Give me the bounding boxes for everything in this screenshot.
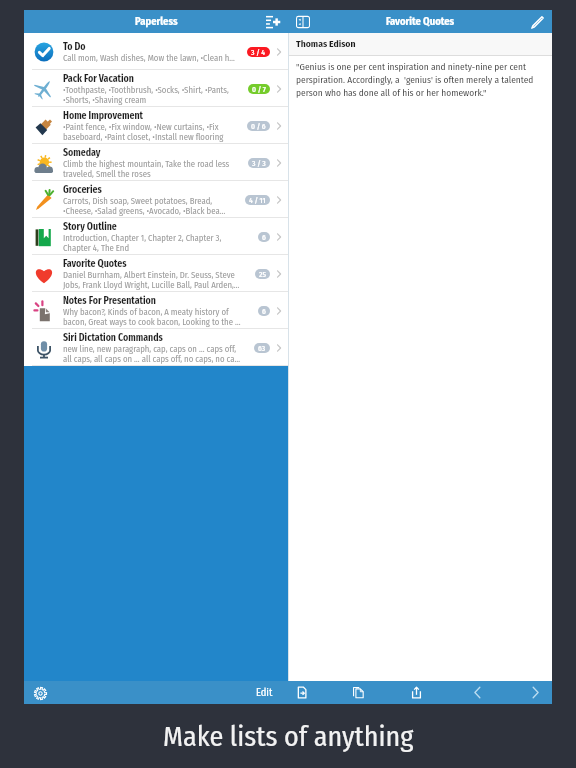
staticText: Favorite Quotes bbox=[63, 258, 127, 270]
staticText: Home Improvement bbox=[63, 110, 144, 122]
button[interactable]: Siri Dictation Commands bbox=[24, 329, 288, 366]
button[interactable]: Home Improvement bbox=[24, 107, 288, 144]
button[interactable]: Share bbox=[405, 681, 428, 704]
staticText: 4 / 11 bbox=[249, 196, 266, 205]
button[interactable]: Previous bbox=[466, 681, 489, 704]
staticText: new line, new paragraph, cap, caps on … … bbox=[63, 344, 242, 364]
button[interactable]: Pack For Vacation bbox=[24, 70, 288, 107]
staticText: 3 / 3 bbox=[252, 159, 266, 168]
button[interactable]: Edit bbox=[256, 686, 273, 699]
button[interactable]: Duplicate bbox=[347, 681, 370, 704]
staticText: Pack For Vacation bbox=[63, 73, 134, 85]
staticText: "Genius is one per cent inspiration and … bbox=[296, 61, 537, 98]
staticText: Siri Dictation Commands bbox=[63, 332, 163, 344]
button[interactable]: Export bbox=[291, 681, 314, 704]
staticText: 6 bbox=[262, 233, 266, 242]
button[interactable]: To Do bbox=[24, 33, 288, 70]
staticText: Thomas Edison bbox=[296, 38, 356, 50]
staticText: Introduction, Chapter 1, Chapter 2, Chap… bbox=[63, 233, 242, 253]
staticText: Groceries bbox=[63, 184, 102, 196]
staticText: Carrots, Dish soap, Sweet potatoes, Brea… bbox=[63, 196, 242, 216]
button[interactable]: Someday bbox=[24, 144, 288, 181]
staticText: 0 / 7 bbox=[252, 85, 266, 94]
button[interactable]: Toggle sidebar bbox=[292, 11, 314, 33]
staticText: Paperless bbox=[135, 15, 178, 28]
staticText: Edit bbox=[256, 686, 273, 699]
button[interactable]: Story Outline bbox=[24, 218, 288, 255]
staticText: 0 / 6 bbox=[251, 122, 266, 131]
button[interactable]: Settings bbox=[30, 683, 50, 703]
staticText: To Do bbox=[63, 41, 86, 53]
button[interactable]: Notes For Presentation bbox=[24, 292, 288, 329]
button[interactable]: Next bbox=[524, 681, 547, 704]
button[interactable]: Groceries bbox=[24, 181, 288, 218]
staticText: 25 bbox=[259, 270, 266, 279]
staticText: Daniel Burnham, Albert Einstein, Dr. Seu… bbox=[63, 270, 242, 290]
staticText: Someday bbox=[63, 147, 101, 159]
staticText: Make lists of anything bbox=[163, 720, 414, 754]
staticText: Why bacon?, Kinds of bacon, A meaty hist… bbox=[63, 307, 242, 327]
staticText: 3 / 4 bbox=[251, 48, 266, 57]
staticText: •Toothpaste, •Toothbrush, •Socks, •Shirt… bbox=[63, 85, 242, 105]
button[interactable]: Favorite Quotes bbox=[24, 255, 288, 292]
staticText: Climb the highest mountain, Take the roa… bbox=[63, 159, 242, 179]
staticText: Notes For Presentation bbox=[63, 295, 156, 307]
button[interactable]: New list bbox=[262, 11, 284, 33]
staticText: 63 bbox=[258, 344, 266, 353]
staticText: •Paint fence, •Fix window, •New curtains… bbox=[63, 122, 242, 142]
staticText: Story Outline bbox=[63, 221, 117, 233]
staticText: 6 bbox=[262, 307, 266, 316]
staticText: Call mom, Wash dishes, Mow the lawn, •Cl… bbox=[63, 53, 235, 63]
staticText: Favorite Quotes bbox=[386, 15, 455, 28]
button[interactable]: Edit note bbox=[526, 11, 548, 33]
